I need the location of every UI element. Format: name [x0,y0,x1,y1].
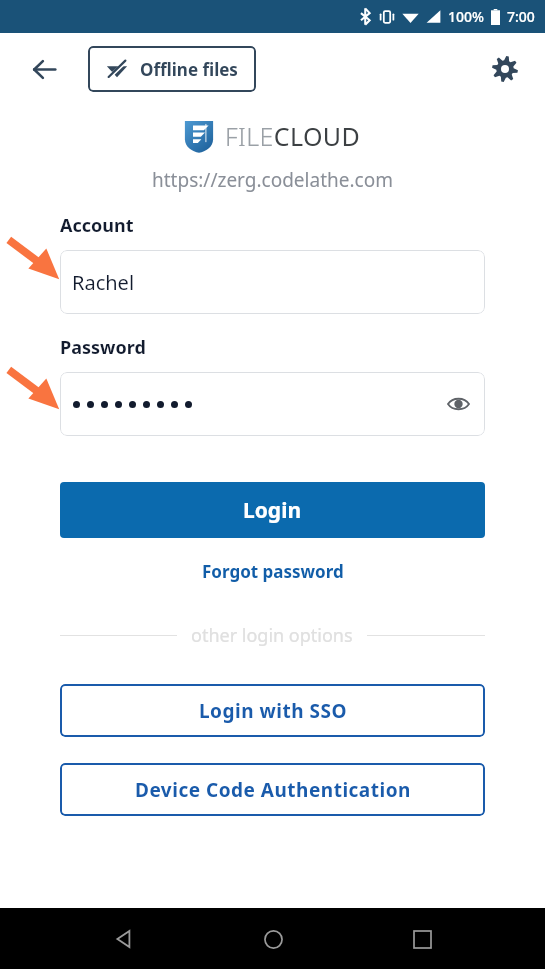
staticText: Forgot password [202,560,344,583]
button[interactable]: Settings [483,47,527,91]
button[interactable]: Back [97,913,149,965]
button[interactable]: Show password [60,372,485,436]
button[interactable]: Login [60,482,485,538]
button[interactable]: Show password [441,387,475,421]
button[interactable]: Rachel [60,250,485,314]
staticText: Offline files [140,58,238,81]
button[interactable]: Back [20,45,68,93]
staticText: 7:00 [507,7,535,26]
button[interactable]: Forgot password [198,556,348,587]
staticText: Device Code Authentication [135,777,411,803]
staticText: Rachel [72,269,135,296]
staticText: Login with SSO [199,698,347,724]
staticText: Login [243,496,302,525]
button[interactable]: Home [247,913,299,965]
staticText: Password [60,335,146,360]
staticText: FILECLOUD [225,119,361,153]
staticText: 100% [448,7,484,26]
staticText: https://zerg.codelathe.com [152,167,393,193]
button[interactable]: Device Code Authentication [60,763,485,816]
button[interactable]: Offline files [88,46,256,92]
staticText: Account [60,213,134,238]
button[interactable]: Login with SSO [60,684,485,737]
button[interactable]: Recent apps [396,913,448,965]
staticText: other login options [191,623,353,648]
